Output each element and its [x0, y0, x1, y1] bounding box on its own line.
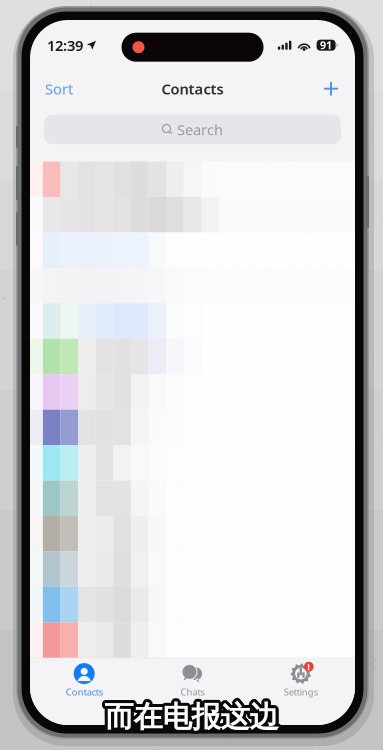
- staticText: 而在电报这边: [102, 699, 276, 735]
- staticText: 12:39: [47, 35, 83, 55]
- staticText: 而在电报这边: [105, 700, 279, 736]
- staticText: 而在电报这边: [104, 699, 278, 735]
- staticText: 而在电报这边: [102, 701, 276, 737]
- button[interactable]: Chats: [138, 659, 247, 702]
- staticText: Contacts: [66, 686, 103, 698]
- staticText: 而在电报这边: [106, 702, 280, 738]
- staticText: 而在电报这边: [107, 700, 281, 736]
- button[interactable]: Search: [44, 109, 341, 161]
- staticText: 而在电报这边: [103, 698, 277, 734]
- button[interactable]: Contacts: [30, 659, 138, 702]
- staticText: 而在电报这边: [106, 698, 280, 734]
- staticText: 而在电报这边: [102, 698, 276, 734]
- staticText: Chats: [180, 686, 204, 698]
- staticText: 而在电报这边: [104, 696, 278, 732]
- staticText: 91: [320, 38, 332, 52]
- staticText: 而在电报这边: [103, 699, 277, 735]
- staticText: 而在电报这边: [103, 696, 277, 732]
- staticText: Contacts: [161, 79, 223, 98]
- staticText: 而在电报这边: [107, 697, 281, 733]
- staticText: 而在电报这边: [105, 697, 279, 733]
- button[interactable]: !: [247, 659, 355, 702]
- staticText: 而在电报这边: [106, 696, 280, 732]
- staticText: 而在电报这边: [103, 702, 277, 738]
- button[interactable]: Add contact: [319, 77, 343, 101]
- staticText: 而在电报这边: [104, 700, 278, 736]
- staticText: 而在电报这边: [107, 699, 281, 735]
- staticText: 而在电报这边: [106, 699, 280, 735]
- staticText: 而在电报这边: [103, 700, 277, 736]
- staticText: Settings: [284, 686, 318, 698]
- staticText: Sort: [45, 79, 73, 98]
- staticText: 而在电报这边: [106, 700, 280, 736]
- staticText: 而在电报这边: [106, 699, 280, 735]
- staticText: 而在电报这边: [105, 701, 279, 737]
- staticText: 而在电报这边: [102, 700, 276, 736]
- button[interactable]: Sort: [42, 74, 76, 103]
- staticText: 而在电报这边: [102, 697, 276, 733]
- staticText: Search: [177, 120, 223, 139]
- staticText: 而在电报这边: [103, 699, 277, 735]
- staticText: !: [307, 660, 310, 673]
- staticText: 而在电报这边: [107, 701, 281, 737]
- staticText: 而在电报这边: [104, 697, 278, 733]
- staticText: 而在电报这边: [107, 698, 281, 734]
- staticText: 而在电报这边: [103, 698, 277, 734]
- staticText: 而在电报这边: [104, 701, 278, 737]
- staticText: 而在电报这边: [105, 698, 279, 734]
- staticText: 而在电报这边: [104, 702, 278, 738]
